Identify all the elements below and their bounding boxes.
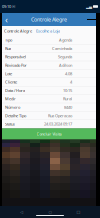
staticText: Rural [63,96,72,101]
button[interactable]: Escolhe a Loja [34,26,62,36]
staticText: Rua [5,46,11,51]
button[interactable]: Back [2,13,11,26]
staticText: Escolhe a Loja [36,28,60,34]
staticText: Detalhe Tipo [5,113,26,118]
staticText: Medir [5,96,16,101]
staticText: Caminhada [52,46,72,51]
button[interactable]: Back [14,206,28,217]
staticText: ✉ [12,4,15,9]
staticText: Controle Alegre [31,16,67,23]
button[interactable]: Concluir Visita [2,128,96,139]
staticText: 10:15 [63,88,72,93]
staticText: □ [76,210,80,214]
staticText: Número [5,104,20,110]
staticText: Concluir Visita [36,131,61,136]
staticText: ▂▄ [86,4,92,9]
staticText: ‹ [5,13,8,26]
staticText: 09:10 [2,4,11,9]
staticText: Controle Alegre [4,28,32,34]
staticText: ○ [48,210,51,214]
staticText: Lote [5,71,12,76]
button[interactable]: Controle Alegre [2,26,34,36]
staticText: Responsável [5,54,26,59]
staticText: Rua Operacao [48,113,72,118]
staticText: 24.03.2024 09:17 [44,121,72,127]
staticText: Revisado Por [5,62,27,68]
staticText: Segunda [58,54,72,59]
staticText: Tipo [5,37,12,43]
staticText: Cliente [5,79,17,85]
staticText: 8440 [64,104,72,110]
staticText: 4.08 [65,71,72,76]
staticText: Data / Hora [5,88,25,93]
staticText: Status [5,121,15,127]
staticText: ◁ [20,210,23,214]
button[interactable]: Recents [71,206,85,217]
staticText: Adilson [59,62,72,68]
staticText: 4 [70,79,72,85]
button[interactable]: Home [43,206,57,217]
staticText: Agenda [59,37,72,43]
